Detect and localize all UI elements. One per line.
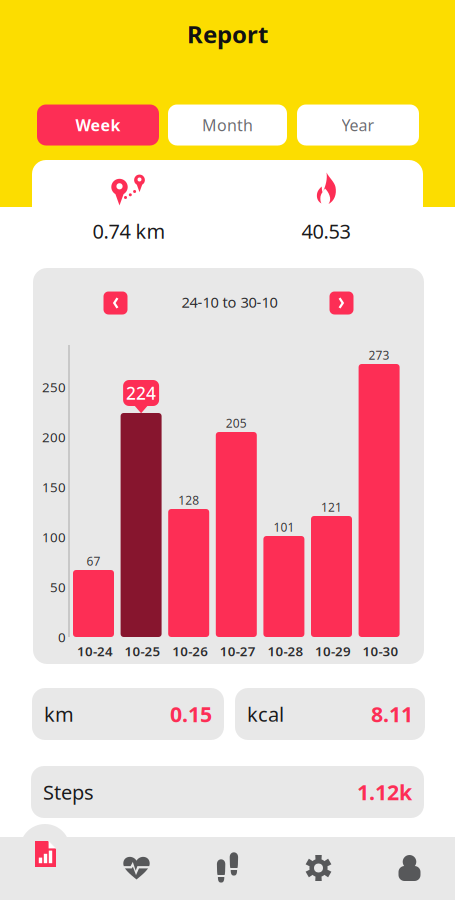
staticText: 10-24 (77, 642, 113, 660)
staticText: 0 (58, 628, 66, 646)
button[interactable]: Steps (182, 836, 273, 899)
staticText: 0.15 (170, 700, 212, 728)
button[interactable]: kcal (235, 688, 425, 740)
staticText: 50 (50, 578, 66, 596)
staticText: Steps (43, 779, 94, 805)
staticText: 101 (273, 519, 294, 535)
button[interactable]: Next week (329, 291, 353, 314)
staticText: kcal (247, 701, 284, 727)
button[interactable]: Week (37, 104, 159, 145)
staticText: km (44, 701, 74, 727)
staticText: 100 (42, 528, 66, 546)
staticText: 10-25 (125, 642, 161, 660)
staticText: 10-30 (363, 642, 399, 660)
button[interactable]: Previous week (103, 291, 127, 314)
staticText: 40.53 (301, 218, 350, 244)
button[interactable]: Year (297, 104, 419, 145)
staticText: 150 (42, 478, 66, 496)
staticText: Report (187, 18, 268, 50)
staticText: 128 (178, 492, 199, 508)
staticText: 10-26 (172, 642, 208, 660)
staticText: 24-10 to 30-10 (181, 292, 277, 312)
staticText: Year (341, 114, 374, 136)
staticText: 10-27 (220, 642, 256, 660)
staticText: 0.74 km (92, 218, 165, 244)
button[interactable]: Month (168, 104, 287, 145)
button[interactable]: Settings (273, 836, 364, 899)
staticText: Week (75, 114, 120, 136)
staticText: 224 (126, 381, 156, 404)
button[interactable]: Steps (31, 766, 424, 818)
staticText: 10-29 (315, 642, 351, 660)
staticText: 250 (42, 378, 66, 396)
staticText: 67 (86, 553, 100, 569)
button[interactable]: Profile (364, 836, 455, 899)
staticText: 10-28 (267, 642, 303, 660)
staticText: 8.11 (371, 700, 413, 728)
button[interactable]: Report (0, 822, 91, 885)
staticText: 273 (369, 347, 390, 363)
staticText: 205 (226, 415, 247, 431)
staticText: Month (202, 114, 253, 136)
staticText: 121 (321, 499, 342, 515)
button[interactable]: km (32, 688, 224, 740)
button[interactable]: Heart rate (91, 836, 182, 899)
staticText: 200 (42, 428, 66, 446)
staticText: 1.12k (357, 778, 412, 806)
